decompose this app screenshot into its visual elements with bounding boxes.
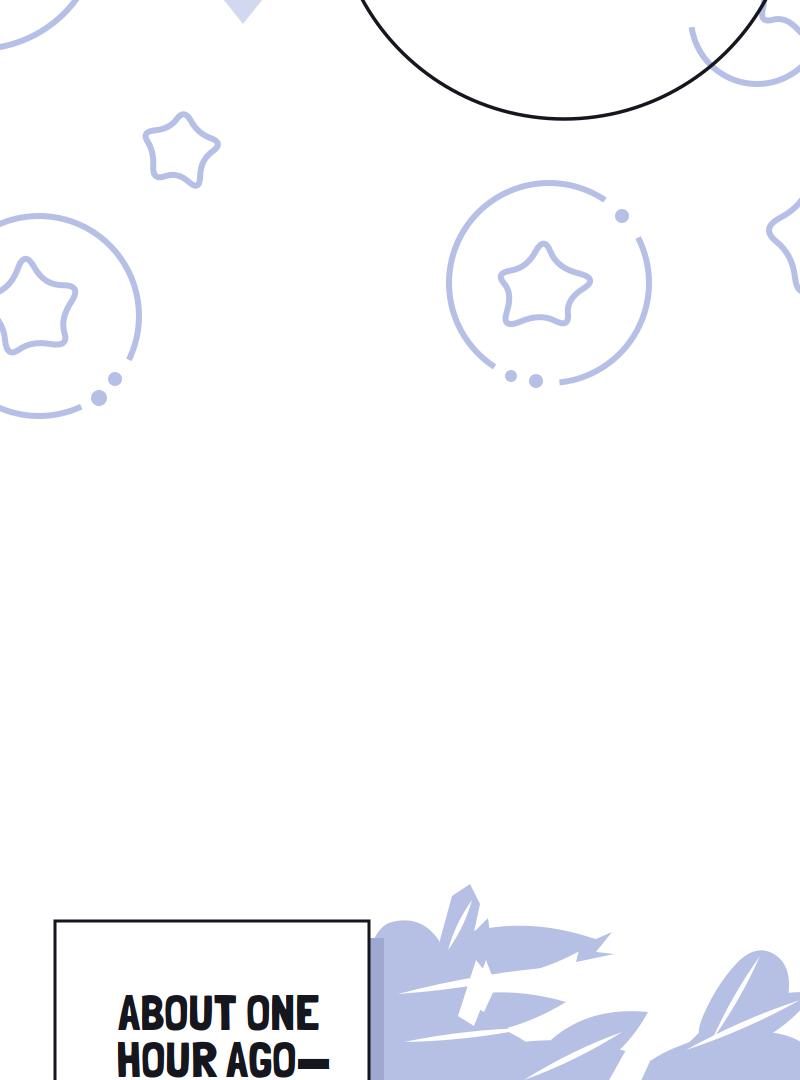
staticText: HOUR AGO— — [116, 1029, 331, 1080]
staticText: ABOUT ONE — [118, 982, 319, 1042]
